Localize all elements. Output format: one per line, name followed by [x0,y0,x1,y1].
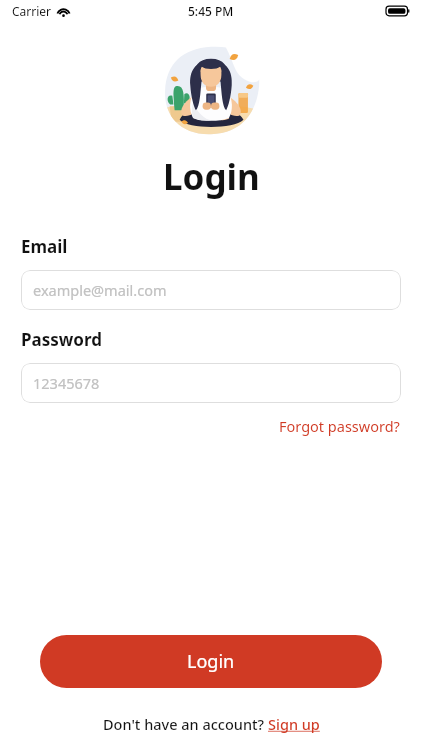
button[interactable]: Login [40,635,382,688]
staticText: Login [187,649,235,674]
other: Wi-Fi [57,6,70,17]
staticText: example@mail.com [33,280,167,300]
staticText: 12345678 [33,373,100,393]
button[interactable]: example@mail.com [21,270,401,310]
button[interactable]: Sign up [268,714,320,734]
button[interactable]: Forgot password? [278,414,401,438]
staticText: Carrier [12,3,52,19]
staticText: Don't have an account? [103,714,268,734]
staticText: Sign up [268,714,320,734]
staticText: 5:45 PM [188,3,234,19]
staticText: Email [21,235,68,258]
staticText: Forgot password? [279,416,400,436]
staticText: Password [21,328,102,351]
button[interactable]: 12345678 [21,363,401,403]
staticText: Login [163,153,260,201]
other: Battery full [386,5,411,17]
